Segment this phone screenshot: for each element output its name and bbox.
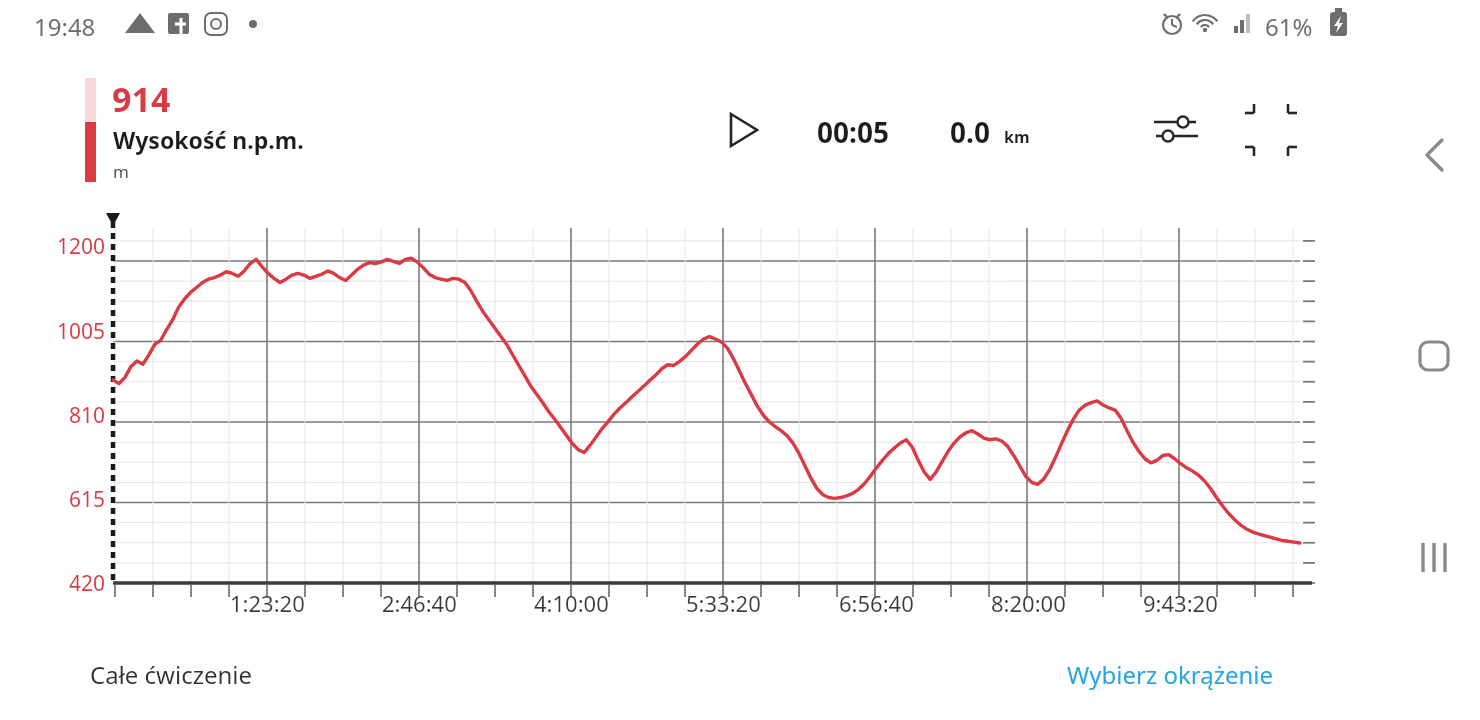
staticText: Całe ćwiczenie	[90, 658, 253, 691]
staticText: 19:48	[34, 10, 96, 43]
staticText: 5:33:20	[686, 588, 761, 618]
button[interactable]: Recent apps	[1410, 533, 1458, 581]
staticText: 8:20:00	[991, 588, 1066, 618]
button[interactable]: Całe ćwiczenie	[90, 658, 253, 691]
staticText: 914	[112, 76, 171, 122]
staticText: 420	[69, 569, 106, 598]
staticText: 1005	[57, 317, 106, 346]
staticText: 00:05	[817, 113, 889, 151]
staticText: 2:46:40	[382, 588, 457, 618]
button[interactable]: Exit full screen	[1244, 104, 1298, 158]
staticText: Wysokość n.p.m.	[113, 124, 304, 155]
staticText: m	[113, 160, 129, 183]
button[interactable]: Wybierz okrążenie	[1067, 658, 1274, 691]
button[interactable]: Play	[722, 106, 770, 154]
staticText: 61%	[1265, 10, 1313, 43]
staticText: 615	[69, 485, 106, 514]
staticText: Wybierz okrążenie	[1067, 658, 1274, 691]
staticText: 1:23:20	[230, 588, 305, 618]
staticText: 4:10:00	[534, 588, 609, 618]
button[interactable]: Home	[1410, 332, 1458, 380]
button[interactable]: Settings	[1150, 106, 1202, 158]
staticText: 6:56:40	[839, 588, 914, 618]
staticText: km	[1004, 126, 1030, 148]
staticText: 9:43:20	[1143, 588, 1218, 618]
staticText: 1200	[57, 232, 106, 261]
button[interactable]: Back	[1410, 131, 1458, 179]
staticText: 0.0	[950, 113, 990, 151]
staticText: 810	[69, 401, 106, 430]
